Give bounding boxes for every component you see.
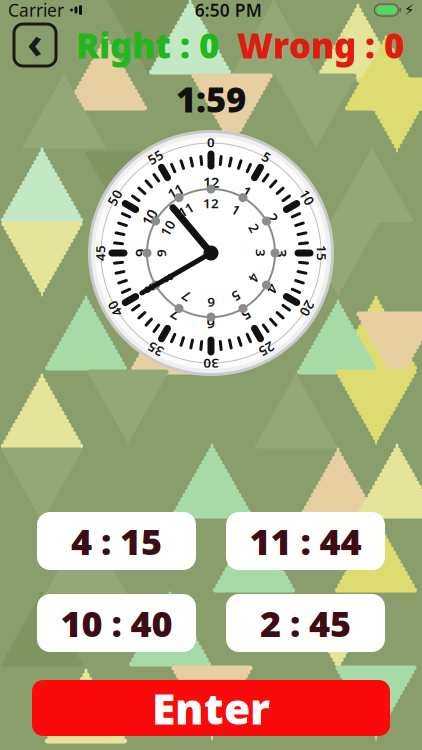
staticText: 30: [203, 133, 219, 151]
staticText: 50: [203, 133, 219, 151]
staticText: 3: [207, 172, 215, 192]
staticText: Enter: [152, 680, 270, 736]
staticText: 9: [207, 172, 215, 192]
button[interactable]: Enter: [32, 680, 390, 736]
staticText: 20: [203, 133, 219, 151]
staticText: Wrong : 0: [237, 22, 404, 68]
staticText: 10: [203, 194, 219, 212]
staticText: 25: [203, 133, 219, 151]
staticText: 10: [203, 172, 219, 192]
staticText: 4: [207, 172, 215, 192]
button[interactable]: 2 : 45: [226, 594, 385, 652]
staticText: 10 : 40: [60, 599, 172, 647]
staticText: 35: [203, 133, 219, 151]
staticText: 15: [203, 133, 219, 151]
staticText: 2: [207, 172, 215, 192]
staticText: 4: [207, 194, 215, 212]
staticText: 7: [207, 194, 215, 212]
button[interactable]: Back: [12, 22, 58, 68]
button[interactable]: 11 : 44: [226, 512, 385, 570]
button[interactable]: 10 : 40: [37, 594, 196, 652]
staticText: 11: [203, 194, 219, 212]
staticText: Right : 0: [76, 22, 219, 68]
staticText: 12: [203, 194, 219, 212]
staticText: 8: [207, 194, 215, 212]
staticText: 45: [203, 133, 219, 151]
staticText: ‹: [27, 14, 43, 70]
staticText: 2: [207, 194, 215, 212]
staticText: 8: [207, 172, 215, 192]
staticText: 1: [207, 172, 215, 192]
staticText: ⚡︎: [404, 2, 414, 18]
staticText: 12: [203, 172, 219, 192]
staticText: 4 : 15: [71, 517, 162, 565]
staticText: 6: [207, 194, 215, 212]
staticText: 55: [203, 133, 219, 151]
staticText: 1: [207, 194, 215, 212]
staticText: 6:50 PM: [195, 0, 262, 21]
staticText: 5: [207, 172, 215, 192]
staticText: 2 : 45: [260, 599, 351, 647]
button[interactable]: 4 : 15: [37, 512, 196, 570]
staticText: 40: [203, 133, 219, 151]
staticText: 6: [207, 172, 215, 192]
staticText: 5: [207, 194, 215, 212]
staticText: Carrier: [8, 0, 64, 21]
staticText: 7: [207, 172, 215, 192]
staticText: 5: [207, 133, 215, 151]
staticText: 1:59: [176, 76, 246, 122]
staticText: 11 : 44: [249, 517, 361, 565]
staticText: 0: [207, 133, 215, 151]
staticText: 9: [207, 194, 215, 212]
staticText: 11: [203, 172, 219, 192]
staticText: 3: [207, 194, 215, 212]
staticText: 10: [203, 133, 219, 151]
